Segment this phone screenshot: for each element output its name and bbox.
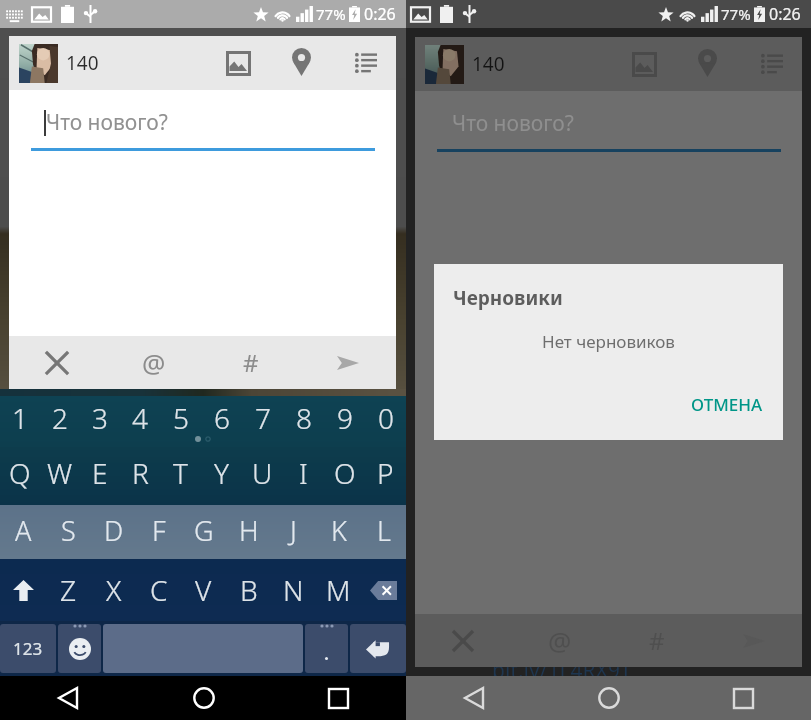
staticText: R: [132, 454, 149, 492]
staticText: L: [377, 512, 391, 549]
staticText: 77%: [721, 4, 751, 24]
staticText: 77%: [316, 4, 346, 24]
button[interactable]: P: [365, 447, 406, 499]
button[interactable]: Mention: [105, 336, 202, 389]
button[interactable]: Drafts: [348, 45, 384, 81]
button[interactable]: Z: [46, 559, 91, 621]
button[interactable]: B: [226, 559, 271, 621]
button[interactable]: 1: [0, 396, 40, 439]
button[interactable]: R: [120, 447, 160, 499]
button[interactable]: T: [160, 447, 201, 499]
staticText: 123: [13, 637, 43, 660]
button[interactable]: Home: [541, 676, 676, 720]
button[interactable]: 5: [160, 396, 201, 439]
button[interactable]: U: [242, 447, 283, 499]
staticText: V: [195, 571, 212, 609]
button[interactable]: 8: [283, 396, 324, 439]
staticText: C: [150, 571, 168, 609]
button[interactable]: I: [283, 447, 324, 499]
button[interactable]: Back: [406, 676, 541, 720]
staticText: M: [326, 571, 351, 609]
staticText: #: [649, 624, 665, 657]
button[interactable]: Period: [305, 624, 348, 673]
staticText: Что нового?: [46, 108, 168, 137]
staticText: @: [548, 623, 572, 658]
button[interactable]: H: [226, 505, 271, 556]
button[interactable]: V: [181, 559, 226, 621]
button[interactable]: J: [271, 505, 316, 556]
staticText: 6: [214, 399, 230, 437]
button[interactable]: Send: [299, 336, 396, 389]
button[interactable]: Cancel: [415, 614, 511, 667]
staticText: G: [194, 512, 214, 549]
staticText: Нет черновиков: [434, 330, 783, 353]
button[interactable]: 6: [201, 396, 242, 439]
button[interactable]: Shift: [0, 559, 46, 621]
staticText: F: [152, 512, 166, 549]
staticText: ОТМЕНА: [691, 393, 763, 416]
button[interactable]: W: [40, 447, 80, 499]
button[interactable]: Profile: [19, 44, 58, 83]
button[interactable]: Switch to numbers: [0, 624, 56, 673]
button[interactable]: Add location: [689, 46, 725, 82]
staticText: Что нового?: [452, 109, 574, 138]
button[interactable]: X: [91, 559, 136, 621]
button[interactable]: 7: [242, 396, 283, 439]
button[interactable]: Drafts: [754, 46, 790, 82]
button[interactable]: K: [316, 505, 361, 556]
staticText: J: [290, 512, 297, 549]
staticText: 0:26: [364, 3, 396, 25]
button[interactable]: 2: [40, 396, 80, 439]
button[interactable]: A: [0, 505, 46, 556]
button[interactable]: 4: [120, 396, 160, 439]
button[interactable]: Cancel: [9, 336, 105, 389]
staticText: 0:26: [769, 3, 801, 25]
staticText: bit.ly/1L4RX9T: [492, 656, 632, 676]
button[interactable]: E: [80, 447, 120, 499]
button[interactable]: 3: [80, 396, 120, 439]
button[interactable]: F: [136, 505, 181, 556]
button[interactable]: Y: [201, 447, 242, 499]
staticText: 9: [337, 399, 353, 437]
button[interactable]: G: [181, 505, 226, 556]
button[interactable]: 0: [365, 396, 406, 439]
staticText: S: [61, 512, 76, 549]
button[interactable]: D: [91, 505, 136, 556]
button[interactable]: Q: [0, 447, 40, 499]
button[interactable]: N: [271, 559, 316, 621]
staticText: @: [142, 345, 166, 380]
button[interactable]: Profile: [425, 45, 464, 84]
button[interactable]: Recent apps: [271, 676, 406, 720]
staticText: N: [283, 571, 304, 609]
staticText: 4: [132, 399, 148, 437]
staticText: O: [334, 454, 356, 492]
button[interactable]: 9: [324, 396, 365, 439]
staticText: 7: [255, 399, 271, 437]
button[interactable]: Attach photo: [220, 45, 256, 81]
button[interactable]: Back: [0, 676, 136, 720]
button[interactable]: Attach photo: [626, 46, 662, 82]
staticText: #: [243, 346, 259, 379]
button[interactable]: ОТМЕНА: [683, 387, 771, 422]
button[interactable]: Enter: [350, 624, 406, 673]
button[interactable]: Add location: [283, 45, 319, 81]
staticText: D: [104, 512, 124, 549]
staticText: I: [299, 454, 308, 492]
staticText: W: [47, 454, 73, 492]
staticText: 8: [296, 399, 312, 437]
button[interactable]: C: [136, 559, 181, 621]
button[interactable]: Emoji: [58, 624, 101, 673]
button[interactable]: Hashtag: [202, 336, 299, 389]
button[interactable]: S: [46, 505, 91, 556]
button[interactable]: O: [324, 447, 365, 499]
button[interactable]: Recent apps: [676, 676, 811, 720]
staticText: P: [377, 454, 394, 492]
button[interactable]: M: [316, 559, 361, 621]
button[interactable]: Home: [136, 676, 271, 720]
button[interactable]: L: [361, 505, 406, 556]
button[interactable]: Backspace: [361, 559, 406, 621]
